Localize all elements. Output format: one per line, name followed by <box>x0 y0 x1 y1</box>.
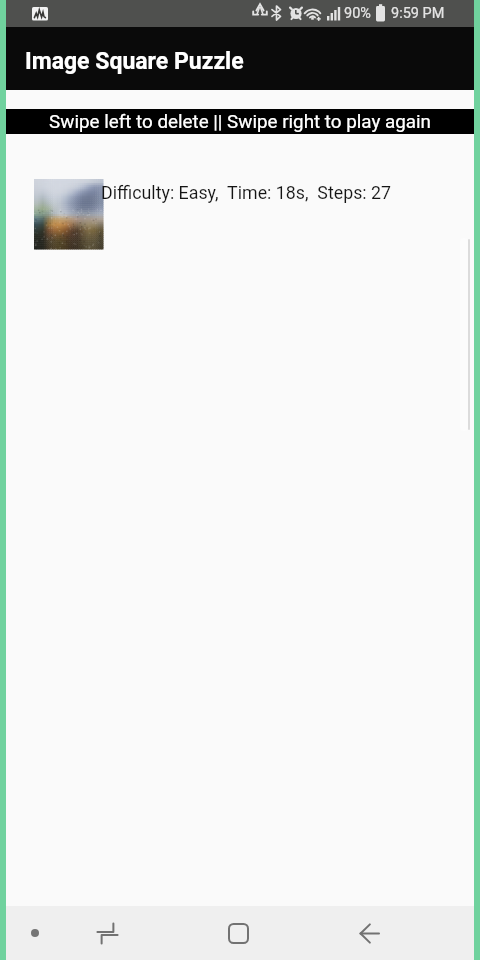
button[interactable]: Image Square Puzzle <box>6 27 474 90</box>
staticText: Image Square Puzzle <box>25 48 244 75</box>
staticText: 90% <box>344 5 371 22</box>
button[interactable]: Difficulty: Easy, Time: 18s, Steps: 27 <box>6 134 474 249</box>
button[interactable]: Back <box>349 906 389 960</box>
button[interactable]: Recent apps <box>87 906 127 960</box>
staticText: Swipe left to delete || Swipe right to p… <box>49 111 431 133</box>
button[interactable]: Menu <box>15 906 55 960</box>
button[interactable]: Home <box>218 906 258 960</box>
staticText: 9:59 PM <box>391 5 445 22</box>
staticText: Difficulty: Easy, Time: 18s, Steps: 27 <box>101 182 392 203</box>
button[interactable]: Swipe left to delete || Swipe right to p… <box>6 109 474 134</box>
